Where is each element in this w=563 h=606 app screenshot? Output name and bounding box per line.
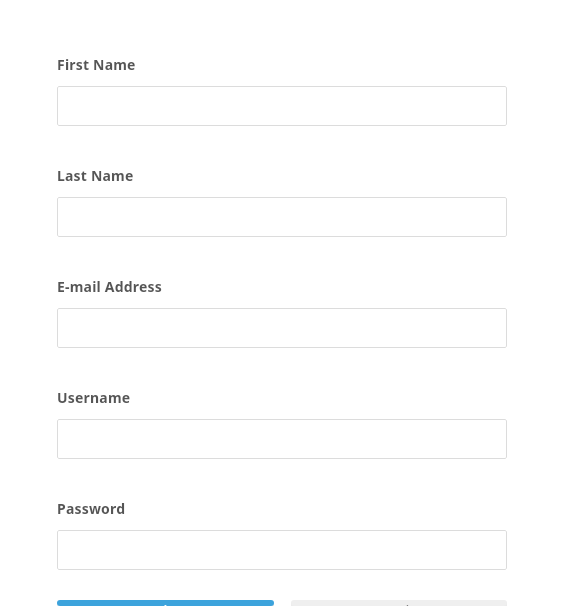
button[interactable]: Login <box>291 600 507 606</box>
staticText: Login <box>379 600 419 606</box>
staticText: E-mail Address <box>57 277 162 296</box>
staticText: Password <box>57 499 126 518</box>
staticText: Username <box>57 388 131 407</box>
button[interactable] <box>57 86 507 126</box>
button[interactable]: Register <box>57 600 274 606</box>
staticText: Register <box>136 600 195 606</box>
button[interactable] <box>57 308 507 348</box>
staticText: First Name <box>57 55 136 74</box>
staticText: Last Name <box>57 166 134 185</box>
button[interactable] <box>57 419 507 459</box>
button[interactable] <box>57 530 507 570</box>
button[interactable] <box>57 197 507 237</box>
